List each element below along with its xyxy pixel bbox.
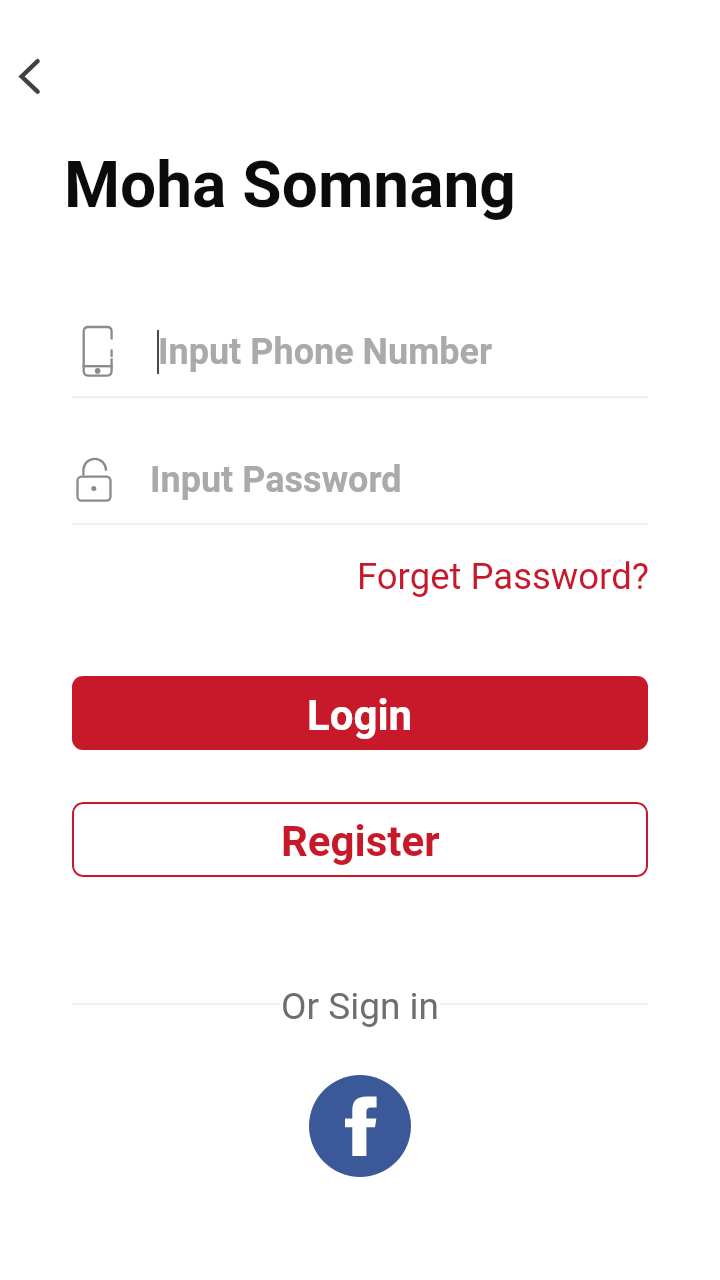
- staticText: Input Password: [150, 459, 402, 501]
- staticText: Forget Password?: [357, 555, 649, 598]
- button[interactable]: Forget Password?: [338, 540, 648, 604]
- button[interactable]: Register: [72, 802, 648, 877]
- staticText: Moha Somnang: [64, 148, 516, 223]
- button[interactable]: Sign in with Facebook: [309, 1075, 411, 1177]
- staticText: Register: [281, 817, 440, 866]
- button[interactable]: Login: [72, 676, 648, 750]
- staticText: Input Phone Number: [158, 331, 493, 373]
- staticText: Login: [307, 691, 413, 740]
- button[interactable]: Input Password: [72, 446, 648, 524]
- button[interactable]: Input Phone Number: [72, 318, 648, 396]
- button[interactable]: Back: [0, 40, 64, 112]
- staticText: Or Sign in: [281, 985, 439, 1027]
